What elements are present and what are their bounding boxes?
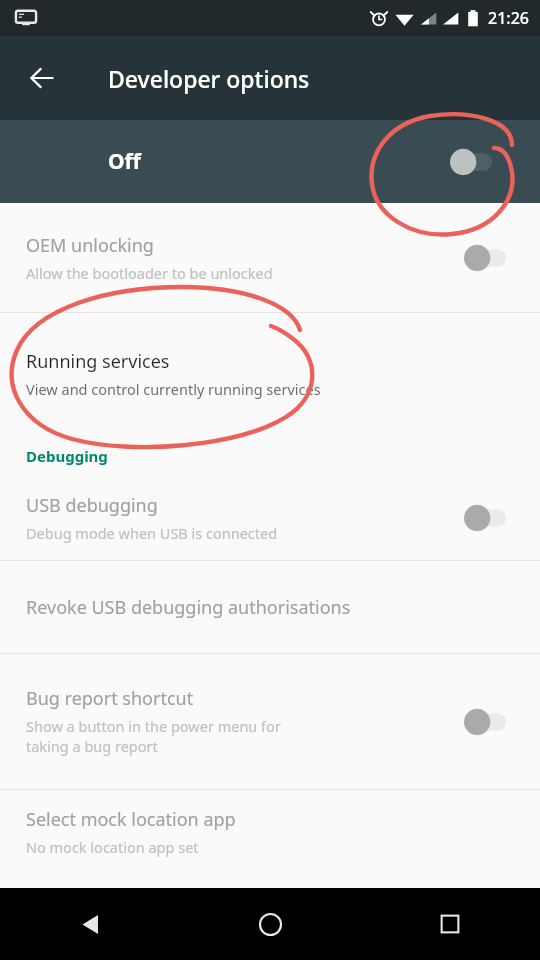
staticText: No mock location app set: [26, 837, 199, 857]
button[interactable]: USB debugging: [0, 476, 540, 560]
other: Cast: [14, 6, 38, 30]
button[interactable]: OEM unlocking: [0, 203, 540, 312]
staticText: View and control currently running servi…: [26, 379, 321, 399]
button[interactable]: Recent apps: [360, 888, 540, 960]
staticText: Developer options: [108, 63, 310, 94]
staticText: Debugging: [26, 446, 108, 466]
staticText: Running services: [26, 349, 170, 374]
staticText: 21:26: [488, 7, 529, 29]
staticText: Allow the bootloader to be unlocked: [26, 263, 273, 283]
button[interactable]: Bug report shortcut: [0, 654, 540, 789]
button[interactable]: Home: [180, 888, 360, 960]
button[interactable]: Off: [0, 120, 540, 203]
staticText: Select mock location app: [26, 807, 236, 832]
staticText: OEM unlocking: [26, 233, 154, 258]
staticText: Bug report shortcut: [26, 686, 194, 711]
button[interactable]: Running services: [0, 313, 540, 435]
staticText: USB debugging: [26, 493, 158, 518]
button[interactable]: Back: [0, 888, 180, 960]
button[interactable]: Revoke USB debugging authorisations: [0, 561, 540, 653]
staticText: Debug mode when USB is connected: [26, 523, 278, 543]
staticText: Show a button in the power menu for taki…: [26, 716, 281, 757]
button[interactable]: Back: [16, 52, 68, 104]
button[interactable]: Select mock location app: [0, 790, 540, 873]
staticText: Revoke USB debugging authorisations: [26, 595, 351, 620]
staticText: Off: [108, 147, 448, 176]
